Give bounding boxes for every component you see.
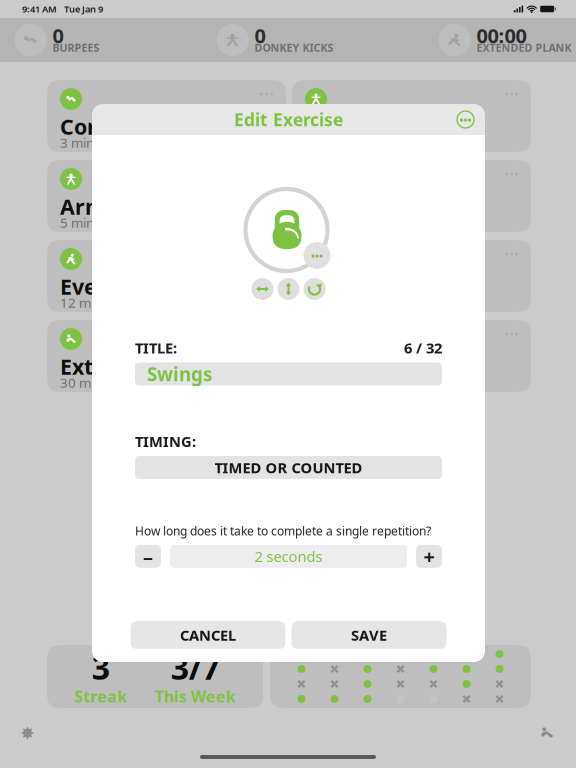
staticText: Arms bbox=[60, 192, 117, 221]
staticText: Cardio bbox=[305, 352, 373, 381]
button[interactable]: Rotate bbox=[303, 278, 325, 300]
button[interactable]: Chest bbox=[292, 240, 531, 312]
staticText: 3 bbox=[92, 646, 110, 689]
button[interactable]: 00:00 bbox=[438, 24, 576, 56]
staticText: Core bbox=[60, 112, 109, 141]
staticText: SAVE bbox=[351, 625, 387, 645]
button[interactable]: Increase bbox=[416, 545, 442, 568]
staticText: 0 bbox=[52, 22, 63, 49]
button[interactable]: Settings bbox=[13, 718, 42, 747]
button[interactable]: Flip vertically bbox=[277, 278, 299, 300]
button[interactable]: Extreme bbox=[47, 320, 286, 392]
staticText: • • • bbox=[505, 329, 518, 340]
staticText: • • • bbox=[505, 249, 518, 260]
staticText: + bbox=[423, 543, 434, 570]
staticText: 0 bbox=[254, 22, 265, 49]
staticText: 2 seconds bbox=[254, 547, 322, 566]
staticText: Streak bbox=[74, 686, 127, 707]
staticText: – bbox=[143, 543, 153, 570]
staticText: 6 / 32 bbox=[404, 338, 442, 357]
button[interactable]: TIMED OR COUNTED bbox=[135, 456, 442, 479]
button[interactable]: Legs bbox=[292, 80, 531, 152]
staticText: Extreme bbox=[60, 352, 149, 381]
staticText: 30 min bbox=[60, 374, 102, 391]
button[interactable]: Decrease bbox=[135, 545, 161, 568]
button[interactable]: Change image bbox=[303, 242, 330, 269]
button[interactable]: More options bbox=[457, 111, 474, 128]
staticText: 20 min bbox=[305, 374, 347, 391]
staticText: Tue Jan 9 bbox=[64, 3, 103, 15]
staticText: • • • bbox=[505, 169, 518, 180]
staticText: 5 min bbox=[60, 214, 94, 231]
staticText: TIMING: bbox=[135, 431, 196, 451]
staticText: 12 min bbox=[60, 294, 102, 311]
staticText: 10 min bbox=[305, 214, 347, 231]
staticText: Back bbox=[305, 192, 356, 221]
staticText: Chest bbox=[305, 272, 366, 301]
button[interactable]: 0 bbox=[216, 24, 438, 56]
staticText: Everyday bbox=[60, 272, 157, 301]
staticText: • • • bbox=[260, 249, 273, 260]
staticText: 3/7 bbox=[171, 646, 220, 689]
staticText: Legs bbox=[305, 112, 354, 141]
staticText: TIMED OR COUNTED bbox=[214, 458, 362, 477]
staticText: How long does it take to complete a sing… bbox=[135, 523, 431, 539]
staticText: BURPEES bbox=[52, 40, 99, 55]
staticText: • • • bbox=[260, 89, 273, 100]
staticText: 8 min bbox=[305, 134, 339, 151]
staticText: This Week bbox=[155, 686, 236, 707]
staticText: 9:41 AM bbox=[22, 3, 57, 15]
button[interactable]: 0 bbox=[14, 24, 216, 56]
staticText: • • • bbox=[505, 89, 518, 100]
button[interactable]: Flip horizontally bbox=[251, 278, 273, 300]
button[interactable]: SAVE bbox=[291, 621, 446, 649]
button[interactable]: Arms bbox=[47, 160, 286, 232]
button[interactable]: Everyday bbox=[47, 240, 286, 312]
staticText: ••• bbox=[311, 248, 323, 263]
staticText: Swings bbox=[147, 362, 212, 386]
button[interactable]: Cardio bbox=[292, 320, 531, 392]
staticText: ••• bbox=[459, 112, 471, 127]
staticText: CANCEL bbox=[180, 625, 236, 645]
staticText: 3 min bbox=[60, 134, 94, 151]
button[interactable]: Exercises bbox=[532, 718, 562, 747]
staticText: TITLE: bbox=[135, 338, 177, 357]
staticText: 15 min bbox=[305, 294, 347, 311]
staticText: 00:00 bbox=[476, 22, 526, 49]
staticText: EXTENDED PLANK bbox=[476, 40, 571, 55]
button[interactable]: Back bbox=[292, 160, 531, 232]
button[interactable]: Core bbox=[47, 80, 286, 152]
button[interactable]: CANCEL bbox=[130, 621, 285, 649]
staticText: Edit Exercise bbox=[234, 108, 343, 131]
staticText: DONKEY KICKS bbox=[254, 40, 333, 55]
